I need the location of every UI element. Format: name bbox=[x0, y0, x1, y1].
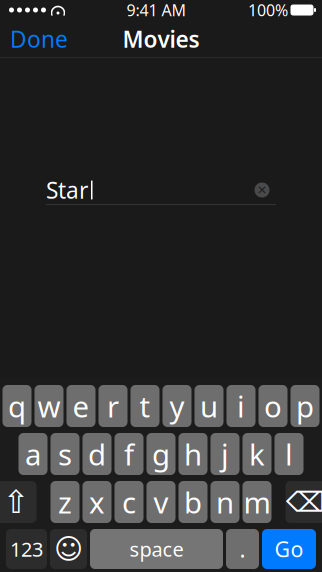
button[interactable]: s bbox=[50, 433, 79, 475]
button[interactable]: a bbox=[18, 433, 47, 475]
staticText: Movies bbox=[122, 24, 199, 54]
button[interactable]: p bbox=[290, 385, 319, 427]
staticText: c bbox=[122, 482, 136, 521]
button[interactable]: m bbox=[242, 481, 271, 523]
staticText: . bbox=[239, 534, 245, 564]
button[interactable]: . bbox=[226, 529, 259, 569]
button[interactable]: j bbox=[210, 433, 239, 475]
staticText: i bbox=[237, 386, 245, 425]
staticText: n bbox=[216, 482, 234, 521]
button[interactable]: e bbox=[66, 385, 95, 427]
button[interactable]: w bbox=[34, 385, 63, 427]
staticText: Done bbox=[10, 24, 68, 54]
button[interactable]: z bbox=[50, 481, 79, 523]
staticText: m bbox=[243, 482, 270, 521]
staticText: s bbox=[58, 434, 72, 473]
staticText: a bbox=[25, 434, 41, 473]
staticText: u bbox=[200, 386, 218, 425]
staticText: d bbox=[88, 434, 106, 473]
button[interactable]: l bbox=[274, 433, 303, 475]
button[interactable]: o bbox=[258, 385, 287, 427]
staticText: o bbox=[264, 386, 282, 425]
button[interactable]: Shift bbox=[0, 481, 36, 523]
staticText: x bbox=[89, 482, 105, 521]
button[interactable]: t bbox=[130, 385, 159, 427]
staticText: f bbox=[124, 434, 134, 473]
staticText: 123 bbox=[10, 536, 43, 562]
button[interactable]: y bbox=[162, 385, 191, 427]
button[interactable]: n bbox=[210, 481, 239, 523]
button[interactable]: r bbox=[98, 385, 127, 427]
staticText: ⇧ bbox=[2, 484, 29, 520]
staticText: l bbox=[285, 434, 293, 473]
button[interactable]: b bbox=[178, 481, 207, 523]
button[interactable]: space bbox=[90, 529, 223, 569]
staticText: space bbox=[129, 536, 183, 562]
staticText: ✕ bbox=[257, 183, 267, 197]
staticText: ☺ bbox=[54, 533, 83, 565]
button[interactable]: u bbox=[194, 385, 223, 427]
button[interactable]: Clear text bbox=[248, 176, 276, 204]
button[interactable]: h bbox=[178, 433, 207, 475]
button[interactable]: f bbox=[114, 433, 143, 475]
staticText: 9:41 AM bbox=[126, 0, 186, 21]
button[interactable]: v bbox=[146, 481, 175, 523]
button[interactable]: q bbox=[2, 385, 31, 427]
staticText: p bbox=[296, 386, 314, 425]
button[interactable]: i bbox=[226, 385, 255, 427]
staticText: Go bbox=[274, 535, 303, 563]
button[interactable]: c bbox=[114, 481, 143, 523]
button[interactable]: x bbox=[82, 481, 111, 523]
staticText: v bbox=[153, 482, 168, 521]
staticText: z bbox=[58, 482, 72, 521]
staticText: 100% bbox=[248, 0, 288, 21]
staticText: t bbox=[139, 386, 150, 425]
staticText: e bbox=[72, 386, 89, 425]
staticText: r bbox=[107, 386, 119, 425]
staticText: ⌫ bbox=[286, 486, 322, 518]
staticText: j bbox=[221, 434, 229, 473]
staticText: b bbox=[184, 482, 202, 521]
button[interactable]: g bbox=[146, 433, 175, 475]
staticText: k bbox=[249, 434, 265, 473]
button[interactable]: d bbox=[82, 433, 111, 475]
staticText: q bbox=[8, 386, 26, 425]
button[interactable]: k bbox=[242, 433, 271, 475]
staticText: y bbox=[169, 386, 184, 425]
staticText: h bbox=[184, 434, 202, 473]
button[interactable]: 123 bbox=[6, 529, 47, 569]
staticText: w bbox=[37, 386, 60, 425]
button[interactable]: Delete bbox=[285, 481, 322, 523]
staticText: g bbox=[152, 434, 170, 473]
staticText: Star bbox=[46, 175, 88, 205]
button[interactable]: Done bbox=[0, 20, 78, 58]
button[interactable]: Emoji bbox=[50, 529, 87, 569]
button[interactable]: Go bbox=[262, 529, 316, 569]
